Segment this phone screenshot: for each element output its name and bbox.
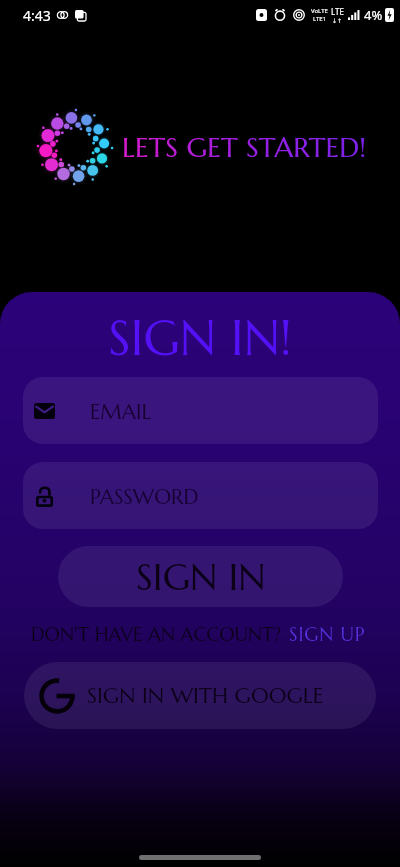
staticText: SIGN IN!	[0, 307, 400, 368]
staticText: VoLTE	[311, 7, 328, 15]
button[interactable]: Email	[23, 377, 378, 444]
staticText: ↓↑	[332, 17, 343, 24]
staticText: PASSWORD	[90, 484, 199, 510]
button[interactable]: SIGN UP	[289, 622, 366, 646]
staticText: 4%	[364, 6, 383, 24]
other: App logo	[34, 106, 116, 188]
staticText: LETS GET STARTED!	[122, 130, 367, 165]
staticText: DON'T HAVE AN ACCOUNT?	[31, 622, 281, 646]
staticText: EMAIL	[90, 399, 152, 425]
staticText: 4:43	[23, 6, 51, 25]
staticText: LTE	[331, 6, 344, 17]
other: Password	[36, 486, 53, 507]
staticText: SIGN IN WITH GOOGLE	[87, 682, 324, 710]
staticText: LTE1	[313, 15, 327, 23]
other: Sign in with Google	[37, 676, 77, 716]
button[interactable]: Password	[23, 462, 378, 529]
staticText: SIGN UP	[289, 622, 366, 646]
button[interactable]: SIGN IN	[58, 546, 343, 607]
staticText: SIGN IN	[136, 554, 266, 600]
button[interactable]: Sign in with Google	[24, 662, 376, 729]
other: Email	[34, 403, 55, 419]
